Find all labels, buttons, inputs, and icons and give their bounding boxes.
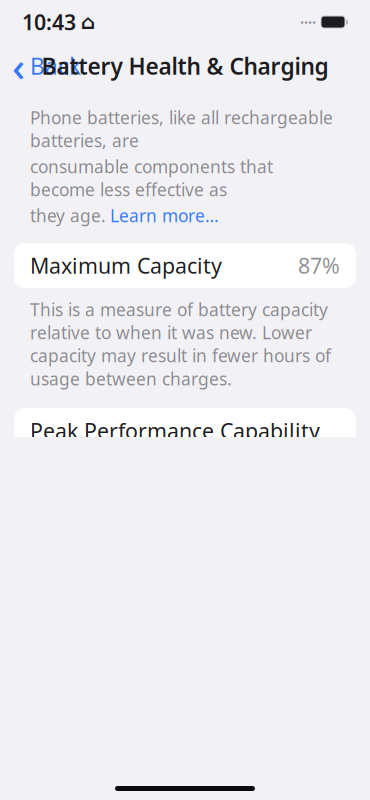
button[interactable]: Peak Performance Capability [14,408,356,453]
staticText: Phone batteries, like all rechargeable b… [30,106,333,152]
staticText: ⌂ [81,11,95,33]
button[interactable]: Maximum Capacity [14,243,356,288]
staticText: Learn more… [110,204,219,227]
staticText: 10:43 [22,8,76,36]
button[interactable]: ‹ [4,35,89,96]
staticText: This is a measure of battery capacity re… [30,298,331,390]
staticText: ‹ [12,39,25,92]
staticText: 87% [298,251,340,280]
staticText: Back [30,51,81,81]
staticText: they age. [30,204,106,227]
staticText: Peak Performance Capability [30,416,320,445]
staticText: ···· [300,12,316,32]
staticText: Battery Health & Charging [41,51,328,81]
staticText: consumable components that become less e… [30,155,273,201]
staticText: Maximum Capacity [30,251,222,280]
button[interactable]: Learn more… [110,204,219,227]
